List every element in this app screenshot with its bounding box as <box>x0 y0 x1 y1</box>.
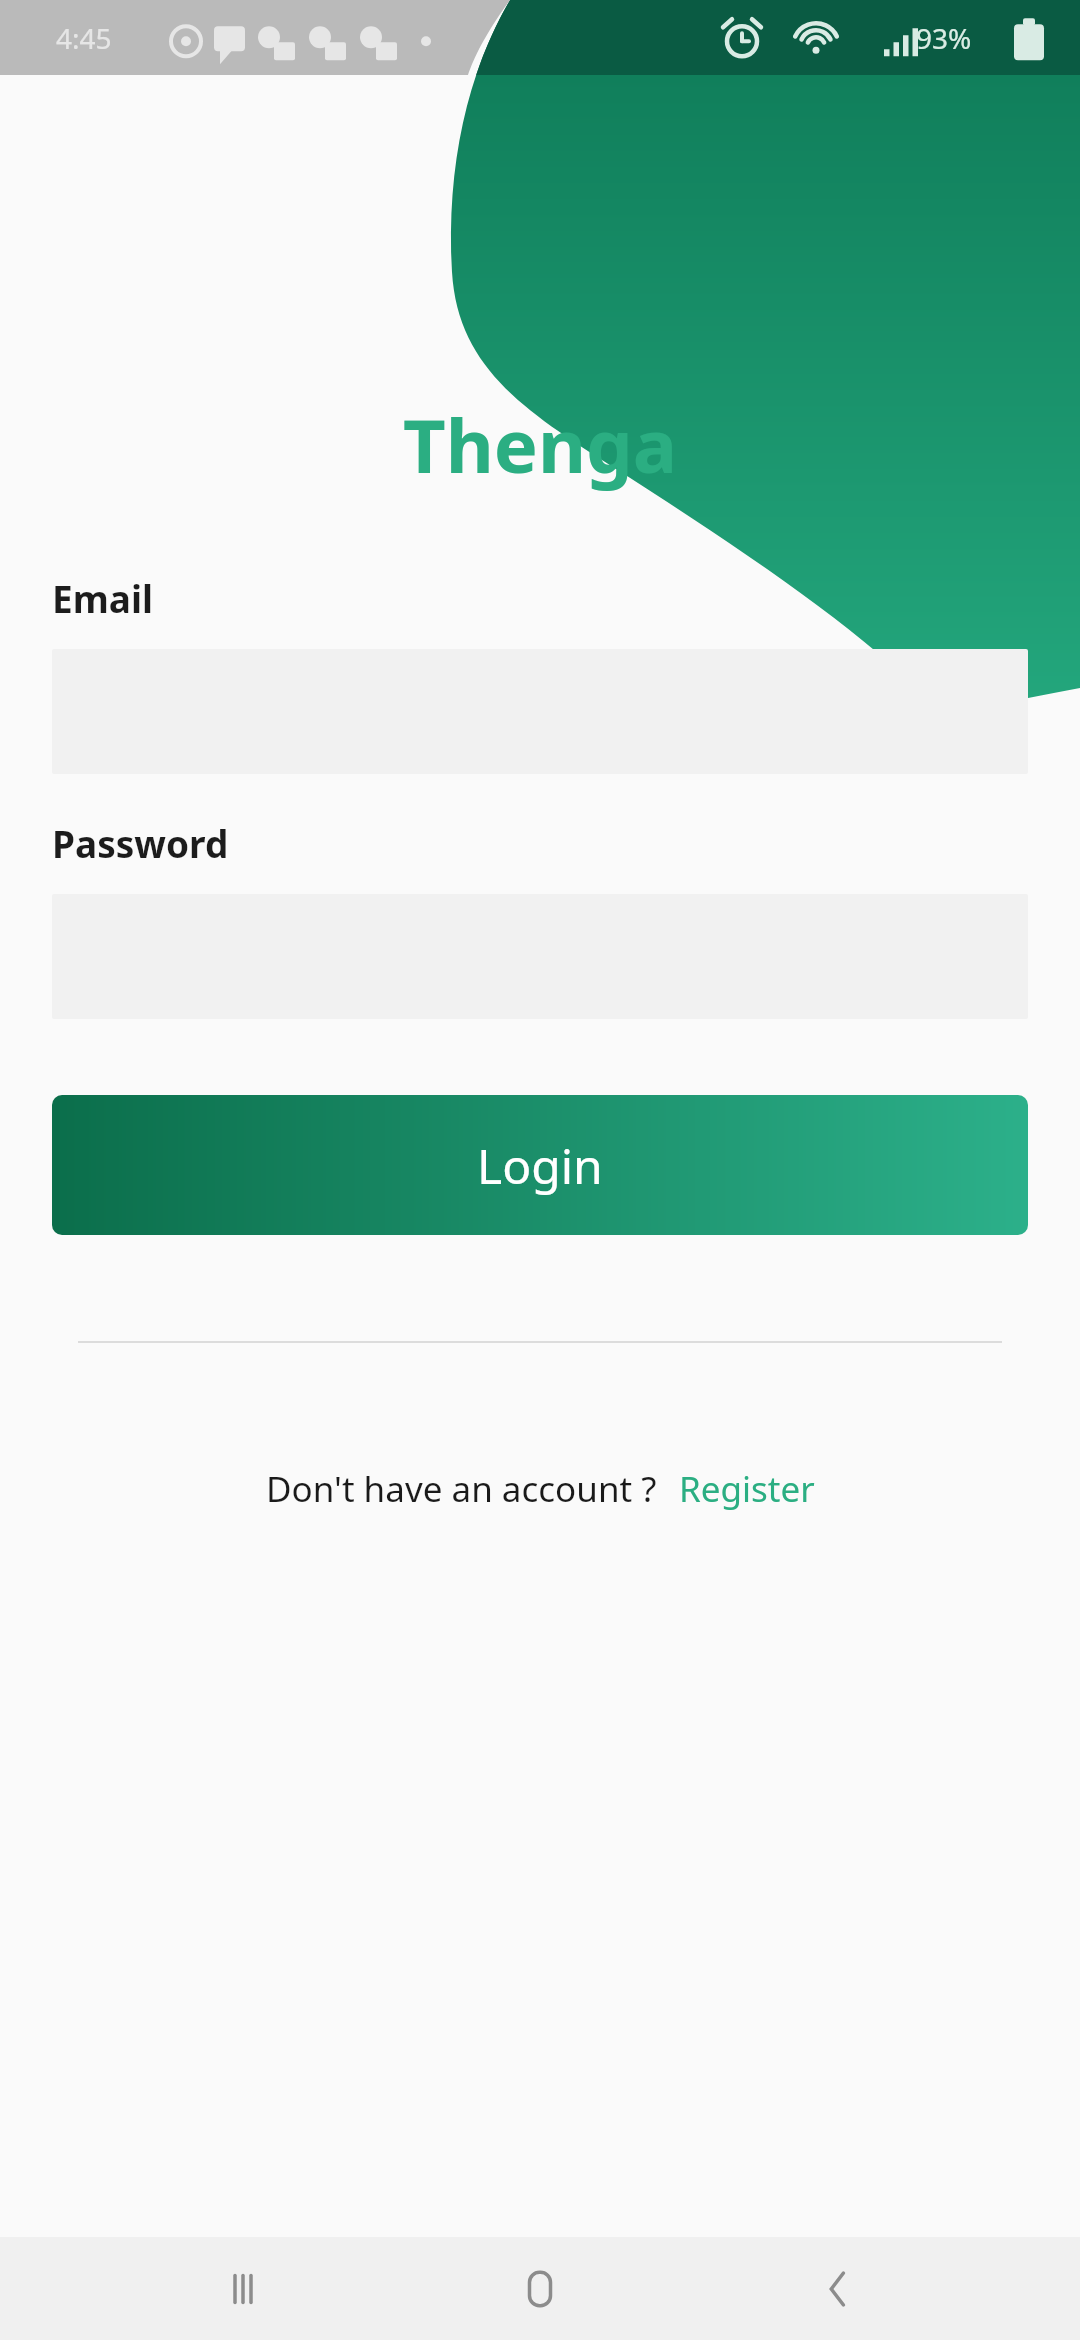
staticText: Register <box>679 1465 815 1513</box>
staticText: 4:45 <box>56 19 112 57</box>
button[interactable]: Recent apps <box>188 2237 298 2340</box>
button[interactable]: Home <box>485 2237 595 2340</box>
staticText: Password <box>52 818 229 868</box>
button[interactable]: Register <box>679 1465 815 1513</box>
staticText: Login <box>477 1133 603 1198</box>
staticText: Don't have an account ? <box>266 1465 657 1513</box>
button[interactable]: Login <box>52 1095 1028 1235</box>
button[interactable]: Back <box>783 2237 893 2340</box>
staticText: Email <box>52 573 154 623</box>
staticText: 93% <box>916 19 972 57</box>
staticText: Thenga <box>403 394 678 495</box>
